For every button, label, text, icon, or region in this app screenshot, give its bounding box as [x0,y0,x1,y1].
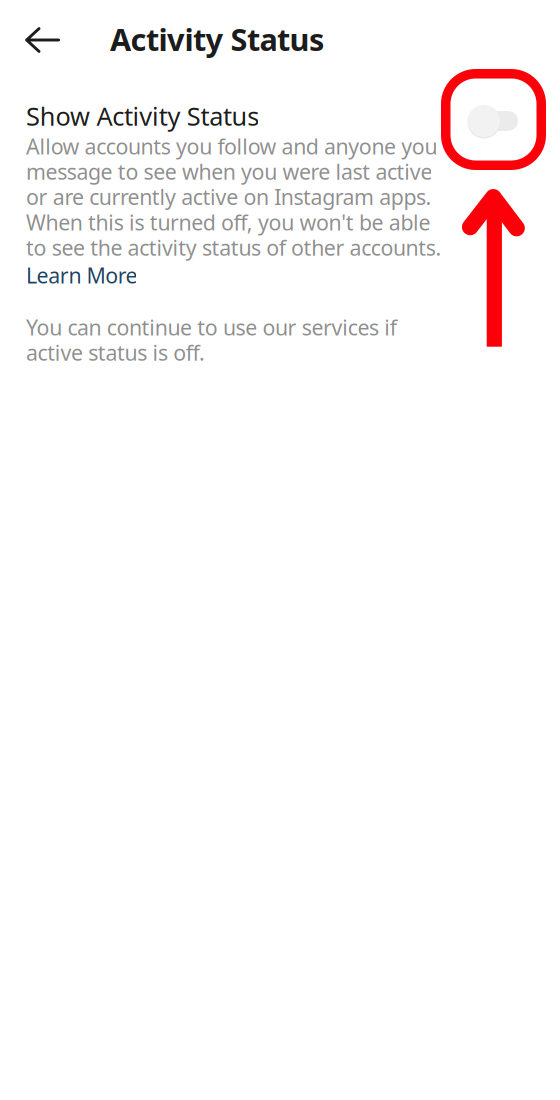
staticText: Learn More [26,261,137,289]
staticText: Allow accounts you follow and anyone you… [26,132,441,262]
button[interactable]: Show Activity Status [466,103,522,139]
staticText: You can continue to use our services if … [26,313,397,367]
staticText: Show Activity Status [26,99,259,133]
button[interactable]: Back [12,13,74,67]
button[interactable]: Learn More [26,258,143,292]
staticText: Activity Status [110,19,324,59]
